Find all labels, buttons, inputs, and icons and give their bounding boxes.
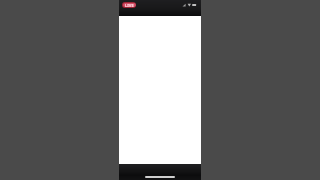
other: Signal, Wi-Fi and battery status [182,3,196,7]
button[interactable]: Home [145,176,175,178]
staticText: LIVE [125,3,134,7]
button[interactable]: LIVE [122,2,136,8]
